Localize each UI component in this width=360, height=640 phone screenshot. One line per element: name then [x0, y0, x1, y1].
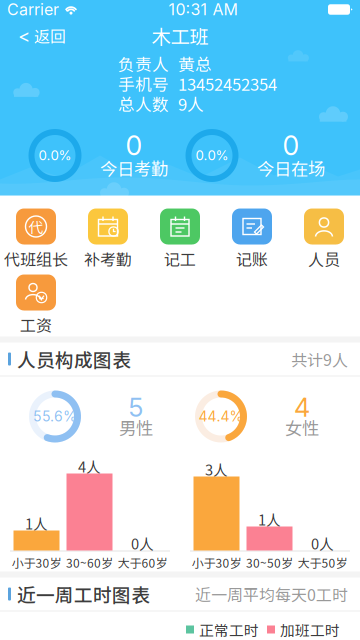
staticText: 黄总: [178, 51, 212, 75]
staticText: 近一周平均每天0工时: [195, 582, 348, 606]
staticText: 正常工时: [199, 619, 259, 640]
staticText: 今日在场: [257, 155, 325, 181]
staticText: 返回: [34, 24, 66, 47]
staticText: 总人数: [118, 91, 169, 115]
staticText: 0.0%: [195, 147, 228, 163]
staticText: 0.0%: [38, 147, 71, 163]
staticText: 1人: [25, 512, 48, 534]
staticText: 0: [125, 129, 142, 162]
staticText: 0人: [311, 532, 334, 554]
button[interactable]: 记工: [144, 208, 216, 266]
staticText: 小于30岁: [191, 554, 241, 571]
staticText: 0: [282, 129, 299, 162]
button[interactable]: <: [0, 20, 78, 50]
button[interactable]: 代: [0, 208, 72, 266]
staticText: 30~60岁: [66, 554, 113, 571]
staticText: 4: [294, 392, 310, 423]
staticText: 今日考勤: [100, 155, 168, 181]
staticText: 加班工时: [280, 619, 340, 640]
staticText: 男性: [119, 415, 153, 440]
staticText: 代: [28, 216, 43, 237]
staticText: 9人: [178, 91, 204, 115]
staticText: 0人: [131, 532, 154, 554]
button[interactable]: 补考勤: [72, 208, 144, 266]
staticText: 4人: [78, 455, 101, 477]
staticText: 44.4%: [198, 408, 243, 425]
staticText: 工资: [20, 313, 52, 336]
staticText: 木工班: [151, 21, 208, 49]
staticText: 手机号: [118, 71, 169, 95]
staticText: 人员: [308, 247, 340, 270]
staticText: 大于60岁: [117, 554, 167, 571]
staticText: <: [18, 24, 30, 47]
button[interactable]: 人员: [288, 208, 360, 266]
staticText: 55.6%: [33, 408, 77, 425]
staticText: 13452452354: [178, 71, 277, 95]
staticText: 30~50岁: [246, 554, 293, 571]
staticText: 补考勤: [84, 247, 132, 270]
staticText: 女性: [285, 415, 319, 440]
staticText: 1人: [258, 508, 281, 530]
staticText: 记工: [164, 247, 196, 270]
staticText: 记账: [236, 247, 268, 270]
staticText: 10:31 AM: [168, 0, 237, 19]
staticText: 共计9人: [291, 347, 348, 371]
staticText: 人员构成图表: [17, 345, 131, 372]
staticText: 5: [128, 392, 143, 423]
button[interactable]: 工资: [0, 274, 72, 332]
staticText: 小于30岁: [11, 554, 61, 571]
staticText: 近一周工时图表: [17, 580, 150, 607]
staticText: 大于50岁: [297, 554, 347, 571]
staticText: 负责人: [118, 51, 169, 75]
staticText: Carrier: [7, 0, 59, 19]
staticText: 代班组长: [4, 247, 68, 270]
button[interactable]: 记账: [216, 208, 288, 266]
staticText: 3人: [205, 458, 228, 480]
